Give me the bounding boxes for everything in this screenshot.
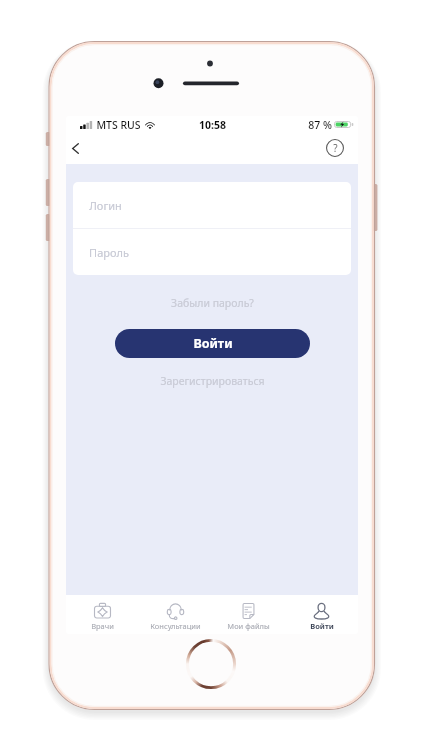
staticText: 10:58 [199, 118, 226, 132]
staticText: Логин [89, 198, 122, 213]
staticText: Врачи [91, 621, 114, 631]
button[interactable]: Пароль [73, 229, 351, 275]
staticText: Пароль [89, 245, 129, 260]
staticText: Войти [193, 335, 233, 352]
staticText: Зарегистрироваться [160, 374, 265, 388]
staticText: Войти [310, 621, 334, 631]
staticText: Мои файлы [227, 621, 270, 631]
button[interactable]: Консультации [139, 595, 212, 634]
button[interactable]: Мои файлы [212, 595, 285, 634]
button[interactable]: Зарегистрироваться [66, 372, 358, 390]
staticText: MTS RUS [96, 118, 141, 132]
staticText: Забыли пароль? [171, 296, 254, 310]
button[interactable]: Врачи [66, 595, 139, 634]
button[interactable]: Войти [115, 329, 310, 358]
staticText: Консультации [150, 621, 201, 631]
button[interactable]: Back [66, 137, 86, 159]
staticText: ? [333, 141, 338, 155]
button[interactable]: Войти [285, 595, 358, 634]
button[interactable]: Логин [73, 182, 351, 228]
button[interactable]: Help [325, 138, 345, 158]
staticText: 87 % [308, 118, 332, 132]
button[interactable]: Забыли пароль? [66, 294, 358, 312]
